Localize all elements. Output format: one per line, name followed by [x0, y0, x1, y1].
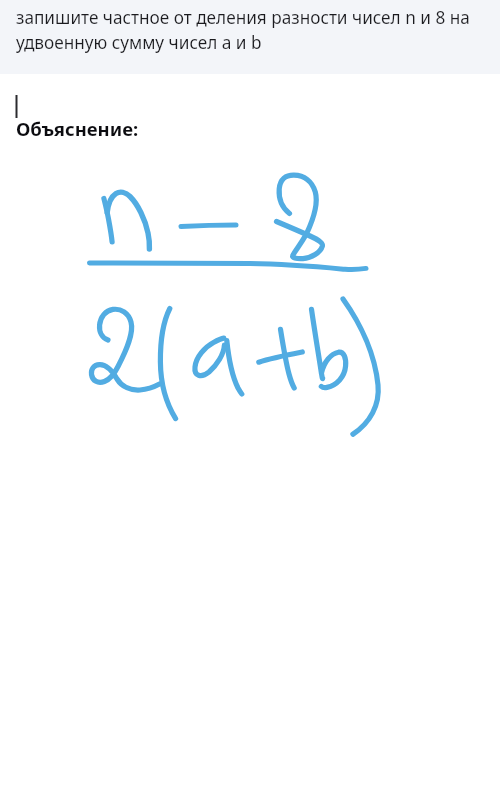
staticText: Объяснение:	[16, 116, 139, 141]
other: Handwritten answer: (n - 8) / 2(a + b)	[0, 0, 500, 732]
staticText: запишите частное от деления разности чис…	[16, 6, 488, 54]
button[interactable]: запишите частное от деления разности чис…	[0, 0, 500, 74]
button[interactable]: Объяснение:	[0, 74, 500, 806]
